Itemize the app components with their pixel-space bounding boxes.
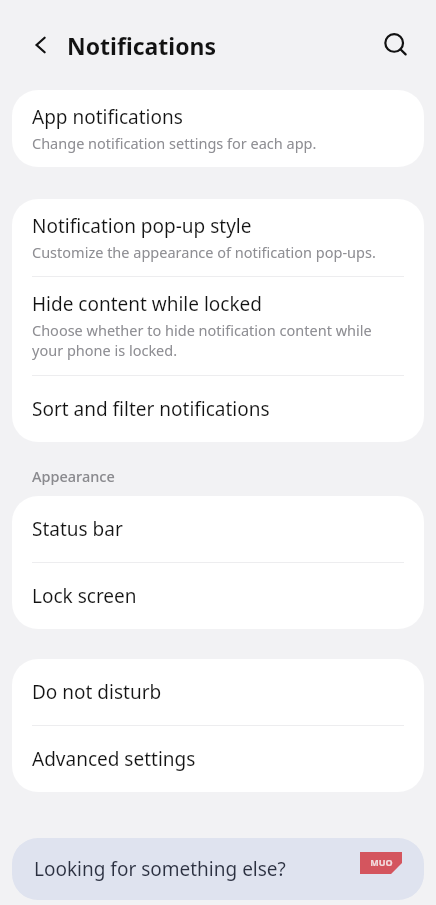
staticText: Do not disturb	[32, 679, 162, 705]
staticText: MUO	[370, 856, 393, 868]
button[interactable]: Sort and filter notifications	[12, 376, 424, 442]
staticText: Sort and filter notifications	[32, 396, 270, 422]
button[interactable]: Status bar	[12, 496, 424, 562]
button[interactable]: Notification pop-up style	[12, 199, 424, 276]
button[interactable]: Lock screen	[12, 563, 424, 629]
staticText: Change notification settings for each ap…	[32, 133, 317, 153]
staticText: Choose whether to hide notification cont…	[32, 320, 404, 361]
staticText: Status bar	[32, 516, 123, 542]
button[interactable]: Do not disturb	[12, 659, 424, 725]
button[interactable]: Hide content while locked	[12, 277, 424, 375]
button[interactable]: Advanced settings	[12, 726, 424, 792]
staticText: Notification pop-up style	[32, 213, 252, 239]
staticText: Appearance	[32, 466, 115, 486]
staticText: Customize the appearance of notification…	[32, 242, 376, 262]
staticText: Looking for something else?	[34, 856, 286, 882]
staticText: Advanced settings	[32, 746, 196, 772]
staticText: Hide content while locked	[32, 291, 262, 317]
staticText: App notifications	[32, 104, 183, 130]
button[interactable]: Search	[372, 21, 420, 69]
button[interactable]: App notifications	[12, 90, 424, 167]
staticText: Notifications	[67, 30, 217, 61]
staticText: Lock screen	[32, 583, 137, 609]
button[interactable]: Back	[17, 21, 65, 69]
button[interactable]: Looking for something else?	[12, 838, 424, 900]
